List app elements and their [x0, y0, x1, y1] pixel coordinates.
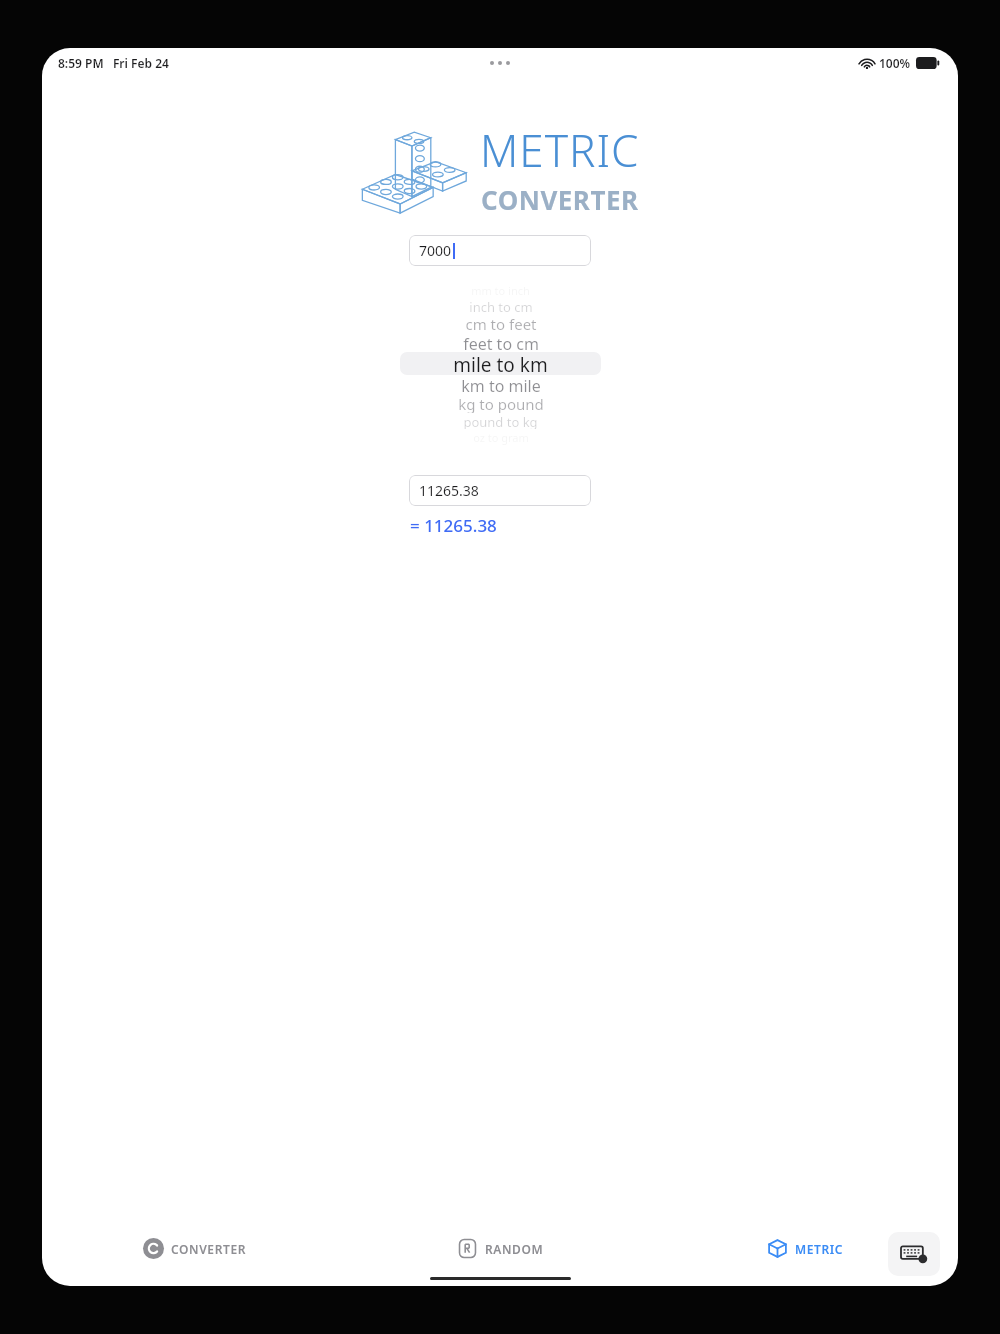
button[interactable]: CONVERTER	[137, 1234, 253, 1263]
staticText: pound to kg	[463, 413, 538, 429]
button[interactable]: kg to pound	[400, 394, 601, 413]
button[interactable]: Dismiss keyboard	[888, 1232, 940, 1276]
staticText: RANDOM	[485, 1241, 544, 1257]
staticText: km to mile	[461, 375, 541, 394]
button[interactable]: cm to feet	[400, 314, 601, 333]
button[interactable]: METRIC	[761, 1234, 850, 1263]
staticText: kg to pound	[458, 394, 544, 413]
button[interactable]: km to mile	[400, 375, 601, 394]
button[interactable]: pound to kg	[400, 413, 601, 429]
staticText: CONVERTER	[171, 1241, 247, 1257]
button[interactable]: feet to cm	[400, 333, 601, 352]
staticText: 8:59 PM Fri Feb 24	[58, 55, 169, 71]
button[interactable]: 7000	[409, 235, 591, 266]
staticText: CONVERTER	[481, 182, 639, 217]
button[interactable]: RANDOM	[451, 1234, 550, 1263]
button[interactable]: 11265.38	[409, 475, 591, 506]
staticText: 7000	[419, 241, 452, 260]
staticText: METRIC	[480, 120, 640, 180]
staticText: 11265.38	[419, 481, 479, 500]
staticText: = 11265.38	[410, 514, 497, 537]
staticText: feet to cm	[463, 333, 539, 352]
staticText: inch to cm	[469, 298, 533, 314]
staticText: mile to km	[453, 352, 548, 375]
staticText: cm to feet	[465, 314, 537, 333]
staticText: METRIC	[795, 1241, 844, 1257]
button[interactable]: mile to km	[400, 352, 601, 375]
button[interactable]: inch to cm	[400, 298, 601, 314]
staticText: 100%	[879, 55, 911, 71]
